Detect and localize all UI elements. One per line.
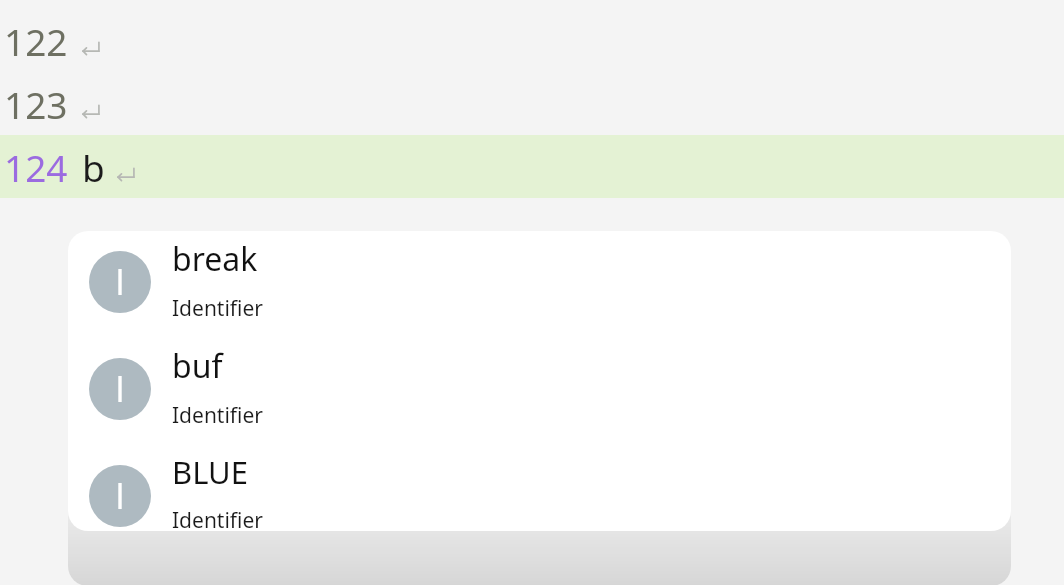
staticText: b	[82, 142, 105, 192]
button[interactable]: buf	[68, 338, 1011, 445]
button[interactable]: BLUE	[68, 445, 1011, 531]
staticText: 124	[4, 142, 68, 192]
staticText: buf	[172, 344, 223, 388]
staticText: 122	[4, 16, 68, 66]
button[interactable]: break	[68, 231, 1011, 338]
staticText: 123	[4, 79, 68, 129]
staticText: Identifier	[172, 401, 264, 430]
staticText: Identifier	[172, 294, 264, 323]
button[interactable]: 123	[0, 72, 1064, 135]
button[interactable]: 124	[0, 135, 1064, 198]
staticText: BLUE	[172, 451, 248, 493]
staticText: break	[172, 237, 258, 281]
staticText: Identifier	[172, 506, 264, 531]
button[interactable]: 122	[0, 9, 1064, 72]
